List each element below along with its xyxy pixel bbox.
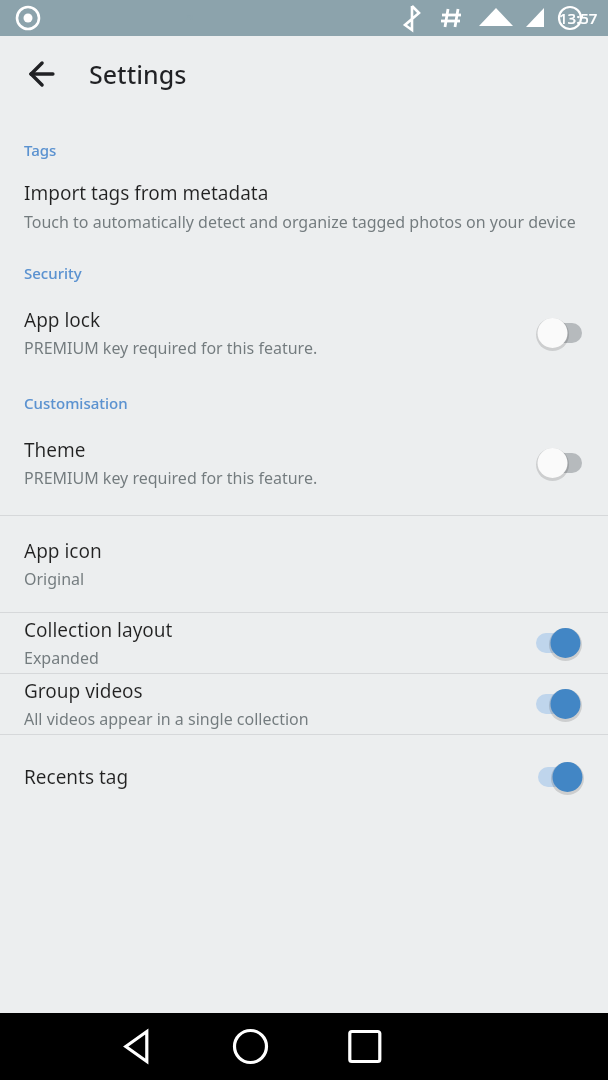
button[interactable]: Collection layout — [530, 623, 588, 663]
staticText: Customisation — [24, 393, 128, 413]
staticText: Collection layout — [24, 617, 173, 643]
button[interactable]: Group videos — [0, 674, 608, 734]
button[interactable]: Back — [14, 46, 70, 102]
button[interactable]: Collection layout — [0, 613, 608, 673]
button[interactable]: App lock — [0, 303, 608, 363]
staticText: Tags — [24, 140, 57, 160]
staticText: App icon — [24, 538, 102, 564]
staticText: Touch to automatically detect and organi… — [24, 211, 576, 233]
button[interactable]: App icon — [0, 516, 608, 612]
staticText: Import tags from metadata — [24, 180, 269, 206]
staticText: Settings — [89, 57, 187, 91]
button[interactable]: Theme — [530, 443, 588, 483]
staticText: PREMIUM key required for this feature. — [24, 467, 318, 489]
button[interactable]: Theme — [0, 433, 608, 493]
button[interactable]: Group videos — [530, 684, 588, 724]
staticText: 13:57 — [559, 8, 598, 28]
staticText: PREMIUM key required for this feature. — [24, 337, 318, 359]
staticText: Expanded — [24, 647, 99, 669]
staticText: App lock — [24, 307, 101, 333]
staticText: Original — [24, 568, 85, 590]
staticText: Security — [24, 263, 82, 283]
staticText: Theme — [24, 437, 86, 463]
button[interactable]: App lock — [530, 313, 588, 353]
staticText: Group videos — [24, 678, 143, 704]
button[interactable]: Import tags from metadata — [0, 180, 608, 233]
button[interactable]: Recents tag — [0, 735, 608, 791]
staticText: Recents tag — [24, 764, 538, 790]
staticText: All videos appear in a single collection — [24, 708, 309, 730]
